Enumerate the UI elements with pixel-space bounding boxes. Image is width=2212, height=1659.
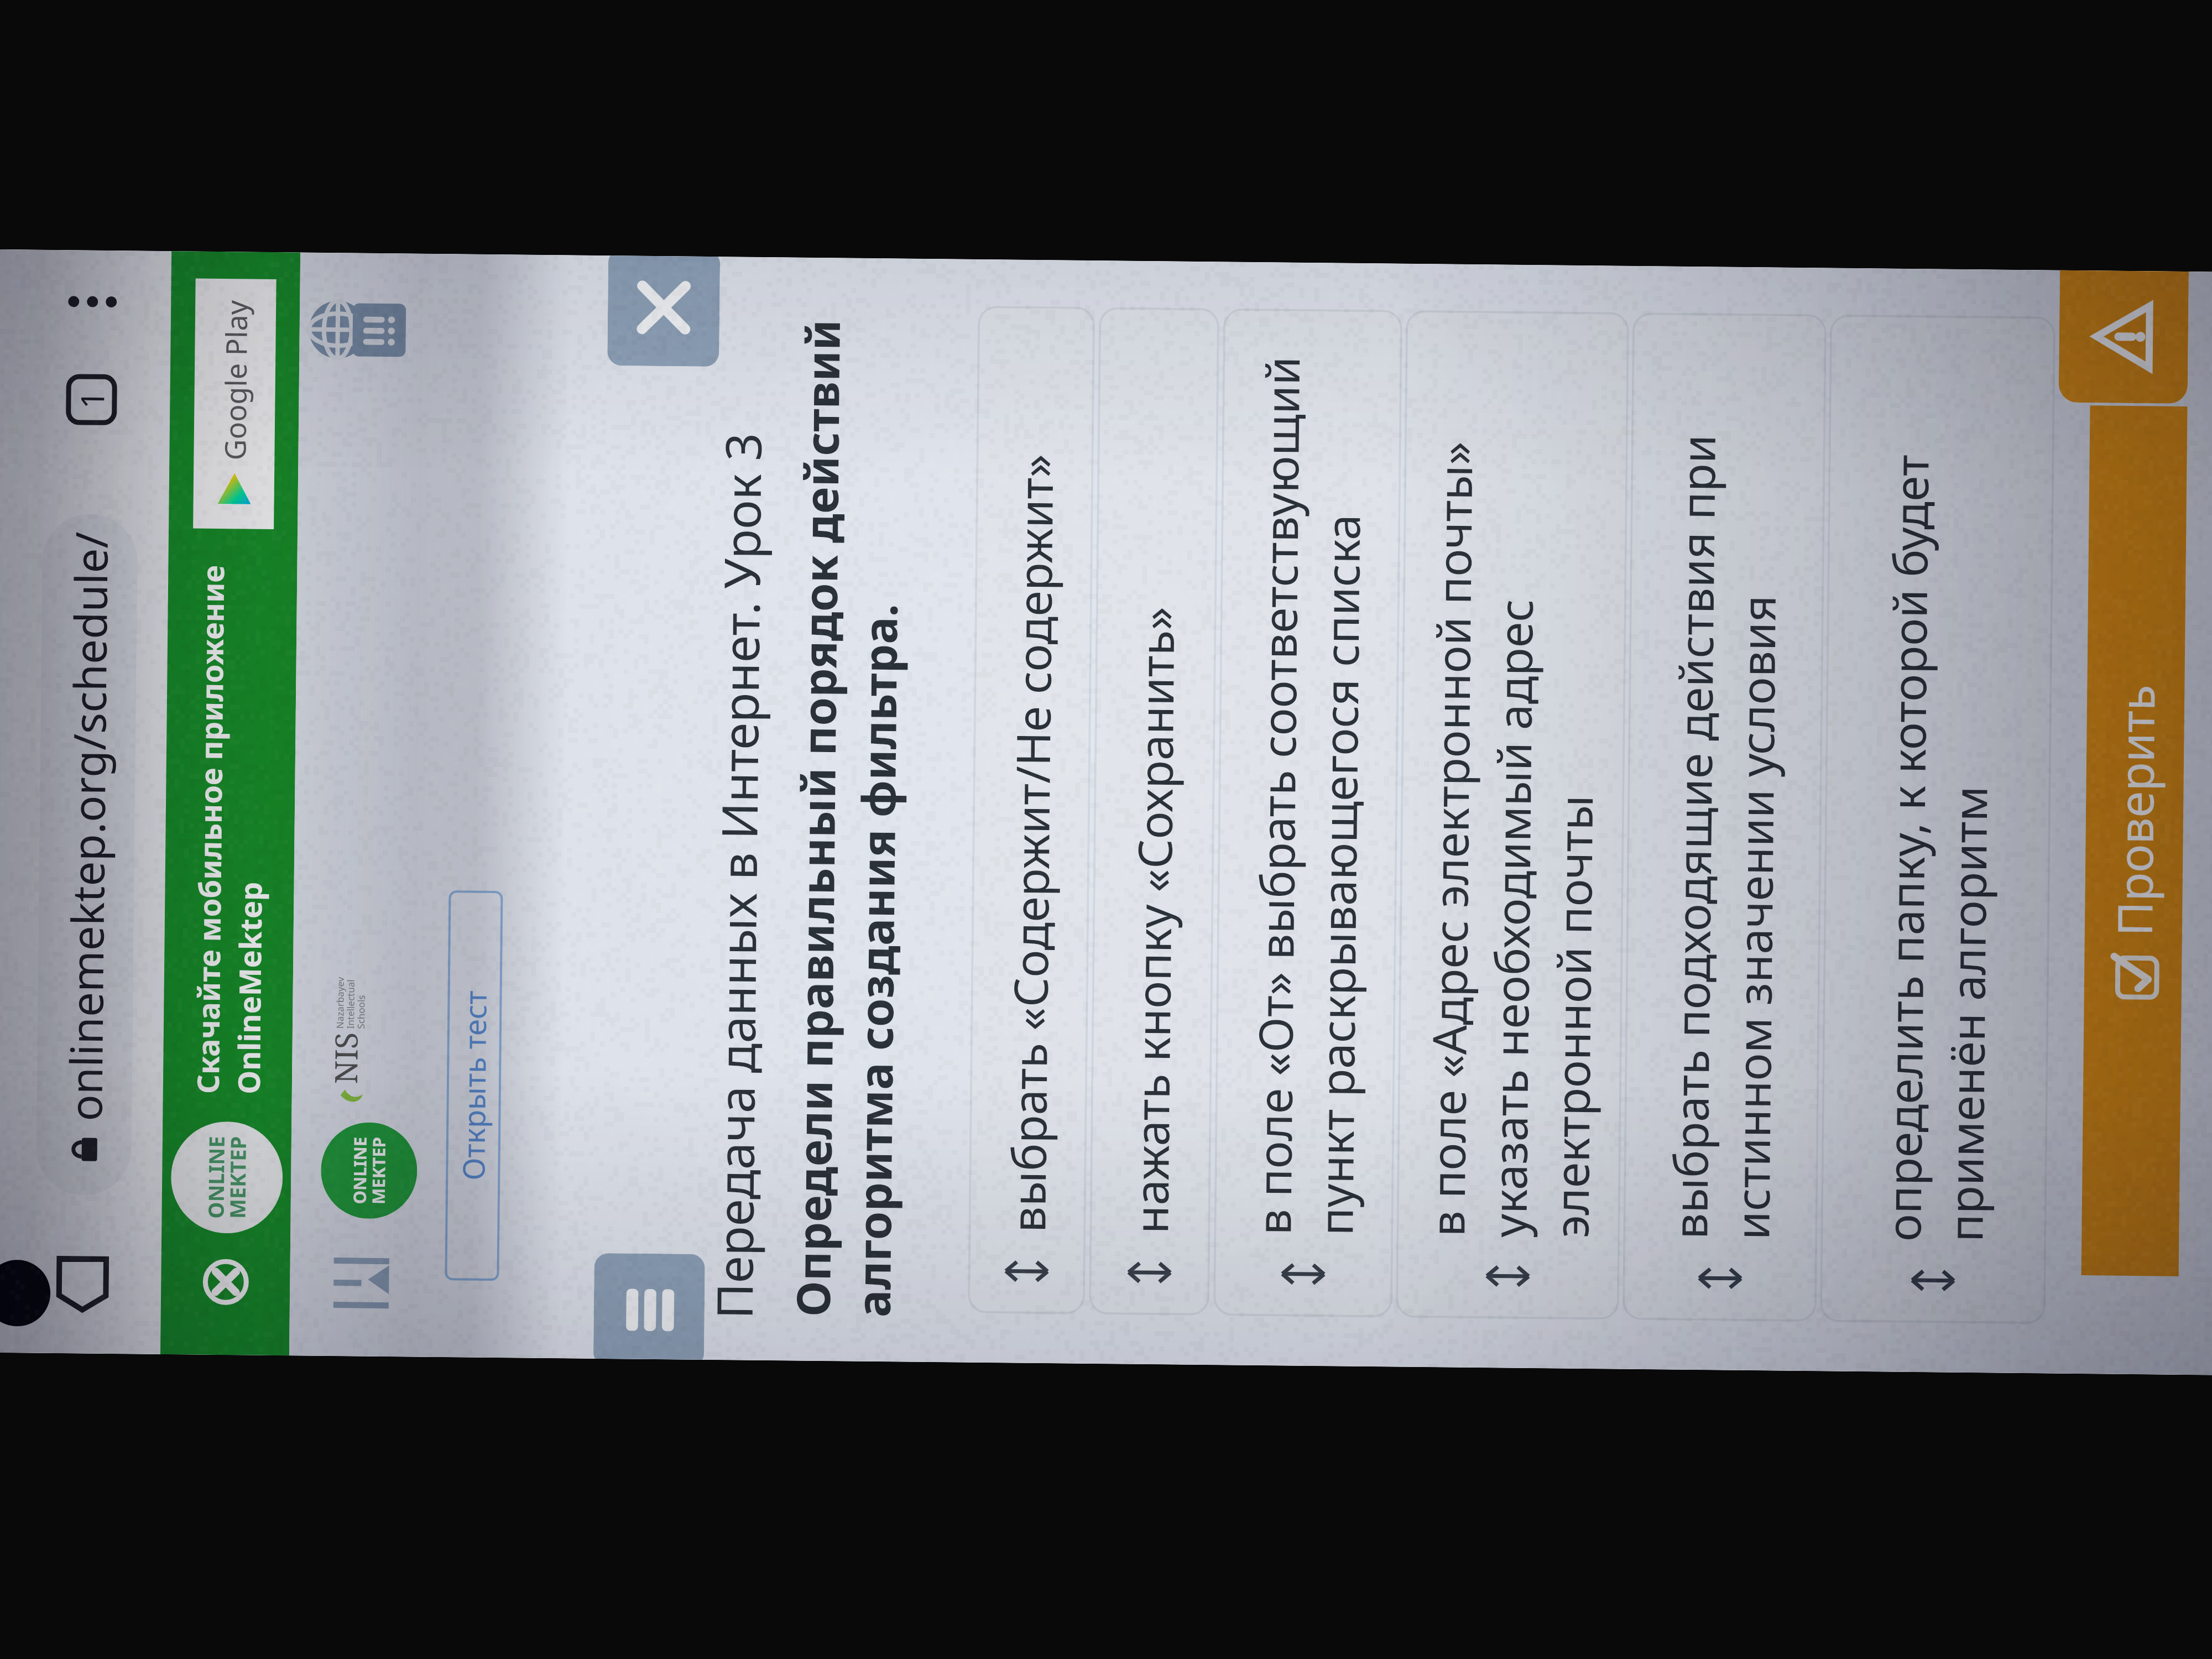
staticText: Скачайте мобильное приложение [187, 565, 233, 1094]
staticText: Google Play [215, 300, 256, 460]
staticText: NIS [324, 1032, 367, 1084]
staticText: в поле «От» выбрать соответствующий пунк… [1241, 356, 1376, 1236]
button[interactable]: Close [607, 256, 720, 367]
button[interactable]: Open menu [593, 1253, 705, 1360]
button[interactable]: выбрать «Содержит/Не содержит» [968, 306, 1095, 1314]
staticText: Nazarbayev Intellectual Schools [333, 977, 368, 1029]
staticText: определить папку, к которой будет примен… [1871, 454, 2004, 1242]
button[interactable]: ONLINE MEKTEP [320, 1122, 418, 1219]
staticText: Определи правильный порядок действий алг… [781, 319, 914, 1318]
button[interactable]: определить папку, к которой будет примен… [1820, 314, 2056, 1324]
button[interactable]: Google Play [193, 278, 276, 529]
staticText: нажать кнопку «Сохранить» [1118, 606, 1188, 1234]
button[interactable]: Открыть тест [445, 890, 503, 1281]
button[interactable]: Tabs [44, 352, 139, 447]
button[interactable]: Скачайте мобильное приложение [187, 565, 274, 1094]
staticText: в поле «Адрес электронной почты» указать… [1415, 441, 1610, 1238]
staticText: 1 [70, 390, 114, 409]
button[interactable]: Report a problem [2059, 270, 2189, 404]
button[interactable]: Close banner [192, 1248, 259, 1315]
button[interactable]: Home [35, 1237, 130, 1332]
staticText: OnlineMektep [228, 882, 271, 1094]
staticText: Открыть тест [452, 990, 495, 1181]
button[interactable]: onlinemektep.org/schedule/ [36, 514, 138, 1196]
staticText: ONLINE MEKTEP [201, 1136, 253, 1219]
button[interactable]: в поле «От» выбрать соответствующий пунк… [1213, 308, 1403, 1318]
button[interactable]: Language [296, 288, 380, 372]
staticText: выбрать «Содержит/Не содержит» [996, 454, 1066, 1233]
button[interactable]: нажать кнопку «Сохранить» [1089, 307, 1219, 1316]
button[interactable]: выбрать подходящие действия при истинном… [1622, 312, 1827, 1322]
button[interactable]: More options [48, 257, 137, 346]
staticText: onlinemektep.org/schedule/ [54, 531, 121, 1121]
button[interactable]: Calculator [337, 288, 421, 372]
staticText: ONLINE MEKTEP [348, 1137, 390, 1205]
button[interactable]: Menu [325, 1244, 398, 1317]
button[interactable]: OnlineMektep [170, 1121, 283, 1234]
staticText: Передача данных в Интернет. Урок 3 [700, 432, 776, 1319]
button[interactable]: Проверить [2081, 405, 2187, 1276]
staticText: Проверить [2101, 684, 2169, 937]
button[interactable]: в поле «Адрес электронной почты» указать… [1396, 310, 1629, 1320]
staticText: выбрать подходящие действия при истинном… [1657, 434, 1791, 1240]
